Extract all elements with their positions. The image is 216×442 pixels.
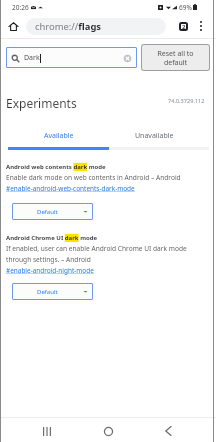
staticText: Android Chrome UI dark mode	[6, 234, 98, 242]
button[interactable]: Dark	[6, 47, 137, 68]
staticText: Unavailable	[135, 131, 174, 141]
button[interactable]: Default	[12, 283, 93, 300]
button[interactable]: chrome://flags	[26, 18, 166, 35]
staticText: 74.0.3729.112	[168, 97, 205, 105]
button[interactable]: Unavailable	[104, 126, 205, 150]
button[interactable]: Switch tabs	[174, 17, 192, 35]
staticText: Android web contents dark mode	[6, 163, 106, 171]
button[interactable]: Home	[4, 17, 22, 35]
button[interactable]: Reset all to default	[141, 44, 210, 71]
button[interactable]: Home	[96, 419, 120, 442]
button[interactable]: Back	[156, 419, 180, 442]
button[interactable]: More options	[192, 17, 210, 35]
staticText: #enable-android-web-contents-dark-mode	[6, 184, 135, 193]
button[interactable]: Recent apps	[35, 419, 59, 442]
staticText: Dark	[24, 53, 40, 63]
button[interactable]: Available	[8, 126, 109, 150]
staticText: If enabled, user can enable Android Chro…	[6, 244, 187, 253]
staticText: Enable dark mode on web contents in Andr…	[6, 173, 181, 182]
staticText: #enable-android-night-mode	[6, 266, 94, 275]
staticText: Default	[37, 208, 58, 216]
staticText: Experiments	[6, 95, 77, 111]
staticText: Available	[44, 131, 74, 141]
staticText: Reset all to default	[157, 49, 194, 67]
staticText: 20:26	[12, 3, 29, 12]
button[interactable]: #enable-android-night-mode	[6, 266, 94, 275]
staticText: 69%	[179, 3, 192, 12]
staticText: through settings. – Android	[6, 255, 91, 264]
button[interactable]: Default	[12, 203, 93, 220]
staticText: chrome://flags	[35, 20, 102, 33]
staticText: 2	[182, 23, 186, 31]
staticText: Default	[37, 288, 58, 296]
button[interactable]: #enable-android-web-contents-dark-mode	[6, 184, 135, 193]
